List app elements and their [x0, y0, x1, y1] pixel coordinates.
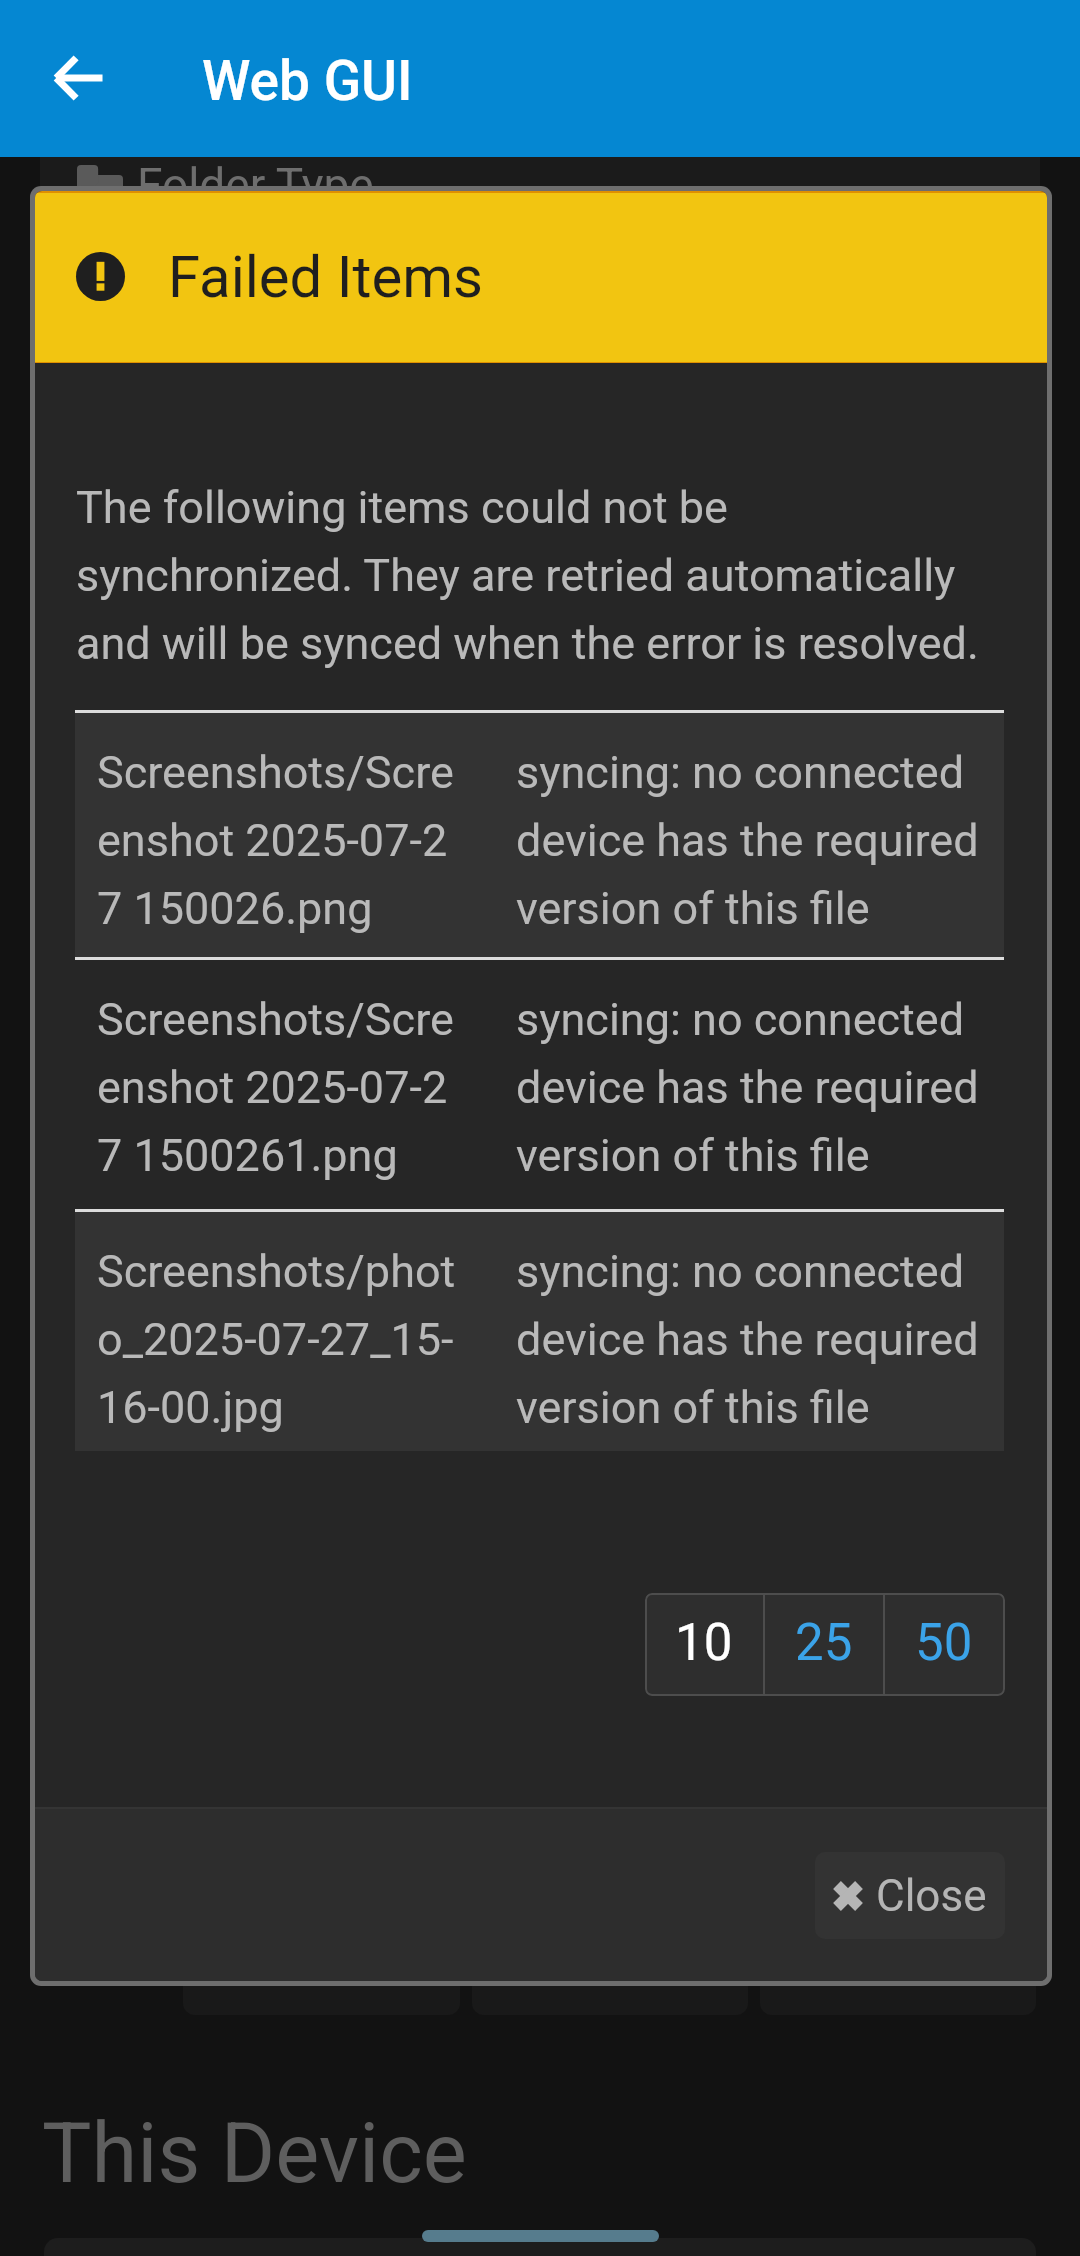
staticText: 16-00.jpg	[97, 1369, 284, 1437]
staticText: 7 150026.png	[97, 870, 373, 938]
staticText: syncing: no connected	[516, 1233, 965, 1301]
staticText: version of this file	[516, 1117, 870, 1185]
staticText: o_2025-07-27_15-	[97, 1301, 454, 1369]
staticText: 50	[915, 1613, 973, 1673]
staticText: and will be synced when the error is res…	[76, 605, 979, 673]
button[interactable]: 25	[765, 1593, 883, 1696]
staticText: Web GUI	[202, 49, 413, 113]
staticText: The following items could not be	[76, 469, 728, 537]
staticText: Screenshots/phot	[97, 1233, 456, 1301]
staticText: 10	[675, 1613, 733, 1673]
staticText: syncing: no connected	[516, 981, 965, 1049]
staticText: enshot 2025-07-2	[97, 1049, 448, 1117]
staticText: Screenshots/Scre	[97, 734, 454, 802]
staticText: Close	[876, 1870, 987, 1922]
staticText: Failed Items	[168, 243, 484, 311]
button[interactable]: Close	[815, 1852, 1005, 1939]
button[interactable]: Back	[25, 24, 133, 132]
staticText: device has the required	[516, 1049, 979, 1117]
staticText: enshot 2025-07-2	[97, 802, 448, 870]
staticText: syncing: no connected	[516, 734, 965, 802]
staticText: version of this file	[516, 1369, 870, 1437]
staticText: 7 1500261.png	[97, 1117, 398, 1185]
staticText: device has the required	[516, 802, 979, 870]
button[interactable]: 10	[645, 1593, 763, 1696]
staticText: synchronized. They are retried automatic…	[76, 537, 956, 605]
staticText: This Device	[42, 2105, 467, 2202]
staticText: Folder Type	[137, 158, 374, 212]
staticText: 25	[795, 1613, 853, 1673]
staticText: version of this file	[516, 870, 870, 938]
staticText: Screenshots/Scre	[97, 981, 454, 1049]
staticText: device has the required	[516, 1301, 979, 1369]
button[interactable]: 50	[885, 1593, 1003, 1696]
